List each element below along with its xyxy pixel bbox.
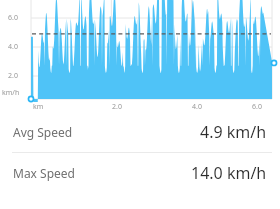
other: Speed chart: [0, 0, 280, 112]
staticText: 4.9 km/h: [200, 121, 267, 143]
staticText: 2.0: [112, 102, 122, 112]
staticText: 4.0: [192, 102, 202, 112]
button[interactable]: Avg Speed: [0, 112, 280, 152]
staticText: 6.0: [252, 102, 262, 112]
staticText: Avg Speed: [13, 124, 73, 140]
staticText: 6.0: [8, 13, 18, 23]
staticText: km: [33, 102, 44, 112]
staticText: 2.0: [8, 71, 18, 81]
staticText: 4.0: [8, 42, 18, 52]
staticText: Max Speed: [13, 165, 75, 181]
button[interactable]: Max Speed: [0, 153, 280, 193]
staticText: 14.0 km/h: [191, 162, 267, 184]
staticText: km/h: [2, 88, 20, 98]
